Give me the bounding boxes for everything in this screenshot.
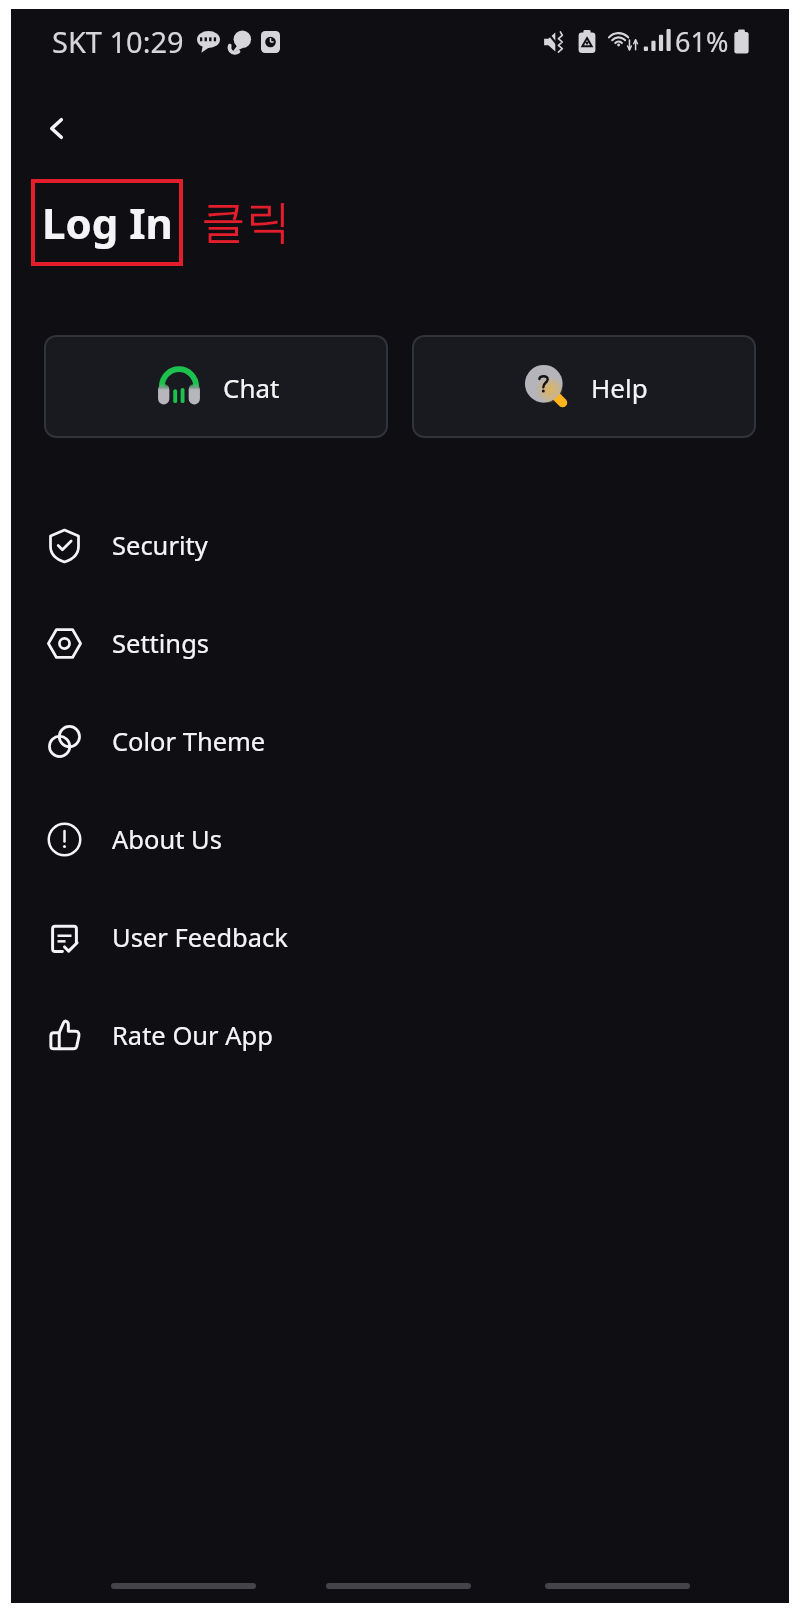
staticText: About Us xyxy=(112,822,222,857)
button[interactable]: Chat xyxy=(44,335,388,438)
button[interactable]: Back xyxy=(28,100,85,157)
button[interactable]: Color Theme xyxy=(11,692,789,790)
button[interactable]: Log In xyxy=(31,179,183,266)
staticText: Color Theme xyxy=(112,724,266,759)
button[interactable]: User Feedback xyxy=(11,888,789,986)
staticText: Settings xyxy=(112,626,210,661)
staticText: 클릭 xyxy=(201,194,291,251)
staticText: Rate Our App xyxy=(112,1018,273,1053)
button[interactable]: Home xyxy=(326,1583,471,1589)
staticText: Log In xyxy=(42,194,173,251)
button[interactable]: Help xyxy=(412,335,756,438)
button[interactable]: Recent apps xyxy=(111,1583,256,1589)
staticText: 61% xyxy=(675,23,729,60)
staticText: Security xyxy=(112,528,208,563)
button[interactable]: Rate Our App xyxy=(11,986,789,1084)
button[interactable]: Back xyxy=(545,1583,690,1589)
button[interactable]: About Us xyxy=(11,790,789,888)
staticText: Help xyxy=(591,370,648,405)
button[interactable]: Settings xyxy=(11,594,789,692)
staticText: SKT 10:29 xyxy=(52,22,184,61)
staticText: User Feedback xyxy=(112,920,288,955)
staticText: Chat xyxy=(223,370,280,405)
button[interactable]: Security xyxy=(11,496,789,594)
